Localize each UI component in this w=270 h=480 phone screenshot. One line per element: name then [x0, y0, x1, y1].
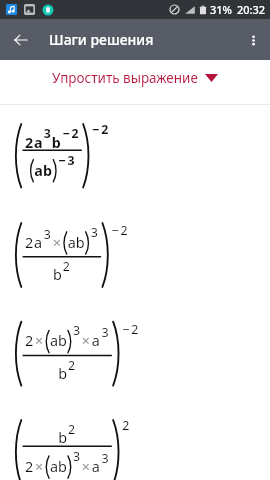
staticText: 20:32	[237, 2, 266, 17]
staticText: 31%	[210, 2, 232, 17]
button[interactable]	[0, 204, 270, 303]
button[interactable]	[0, 105, 270, 204]
button[interactable]	[0, 402, 270, 480]
staticText: Упростить выражение	[52, 69, 198, 87]
button[interactable]: More options	[239, 26, 267, 54]
button[interactable]: Back	[7, 26, 35, 54]
button[interactable]	[0, 303, 270, 402]
staticText: Шаги решения	[49, 30, 154, 49]
button[interactable]: Упростить выражение	[44, 65, 226, 91]
